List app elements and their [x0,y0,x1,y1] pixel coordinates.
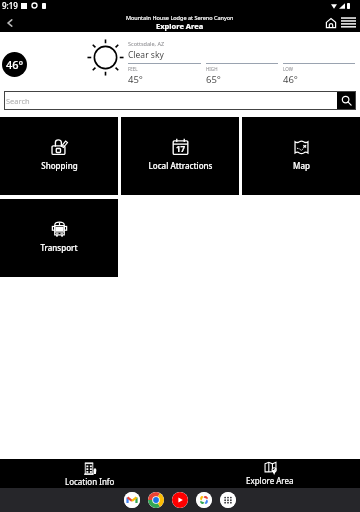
staticText: 46° [6,57,24,72]
staticText: 45° [128,73,143,86]
staticText: 17 [176,143,186,154]
staticText: FEEL [128,66,138,72]
button[interactable]: Location Info [0,459,180,488]
button[interactable]: Back [0,13,20,32]
staticText: Clear sky [128,49,164,61]
staticText: Local Attractions [148,160,213,171]
button[interactable]: Search [337,91,356,110]
button[interactable]: App [196,492,212,508]
button[interactable]: App [148,492,164,508]
staticText: Explore Area [156,21,204,31]
button[interactable]: App [220,492,236,508]
button[interactable]: Menu [340,14,357,31]
staticText: Search [6,96,30,106]
button[interactable]: App [124,492,140,508]
button[interactable]: Home [323,15,339,31]
button[interactable]: Shopping [0,117,118,195]
staticText: Map [293,160,310,171]
button[interactable]: Explore Area [180,459,360,488]
staticText: Mountain House Lodge at Sereno Canyon [126,14,234,21]
staticText: Scottsdale, AZ [128,40,165,47]
button[interactable]: App [172,492,188,508]
staticText: HIGH [206,66,218,72]
staticText: 9:19 [2,0,18,11]
staticText: LOW [283,66,293,72]
staticText: 65° [206,73,221,86]
button[interactable]: Transport [0,199,118,277]
button[interactable]: 17 [121,117,239,195]
button[interactable]: Map [242,117,360,195]
staticText: Explore Area [246,475,294,486]
staticText: Shopping [41,160,78,171]
staticText: 46° [283,73,298,86]
staticText: Location Info [65,476,115,487]
staticText: Transport [40,242,78,253]
